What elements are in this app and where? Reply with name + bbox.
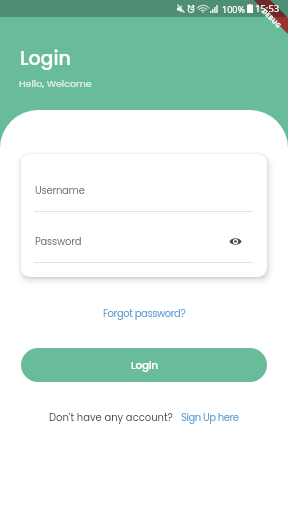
staticText: Hello, Welcome xyxy=(19,77,92,90)
staticText: Login xyxy=(20,45,71,72)
staticText: DEBUG xyxy=(260,7,283,30)
staticText: Username xyxy=(35,183,85,197)
staticText: Forgot password? xyxy=(103,306,186,320)
staticText: Don't have any account? xyxy=(49,410,173,424)
staticText: Sign Up here xyxy=(181,410,239,424)
button[interactable]: Forgot password? xyxy=(97,304,192,322)
staticText: Login xyxy=(131,358,158,373)
button[interactable]: Login xyxy=(21,348,267,382)
staticText: 15:53 xyxy=(255,2,280,15)
button[interactable]: Sign Up here xyxy=(181,410,239,424)
staticText: Password xyxy=(35,234,82,248)
staticText: 100% xyxy=(222,3,245,15)
button[interactable]: Show password xyxy=(226,232,244,250)
